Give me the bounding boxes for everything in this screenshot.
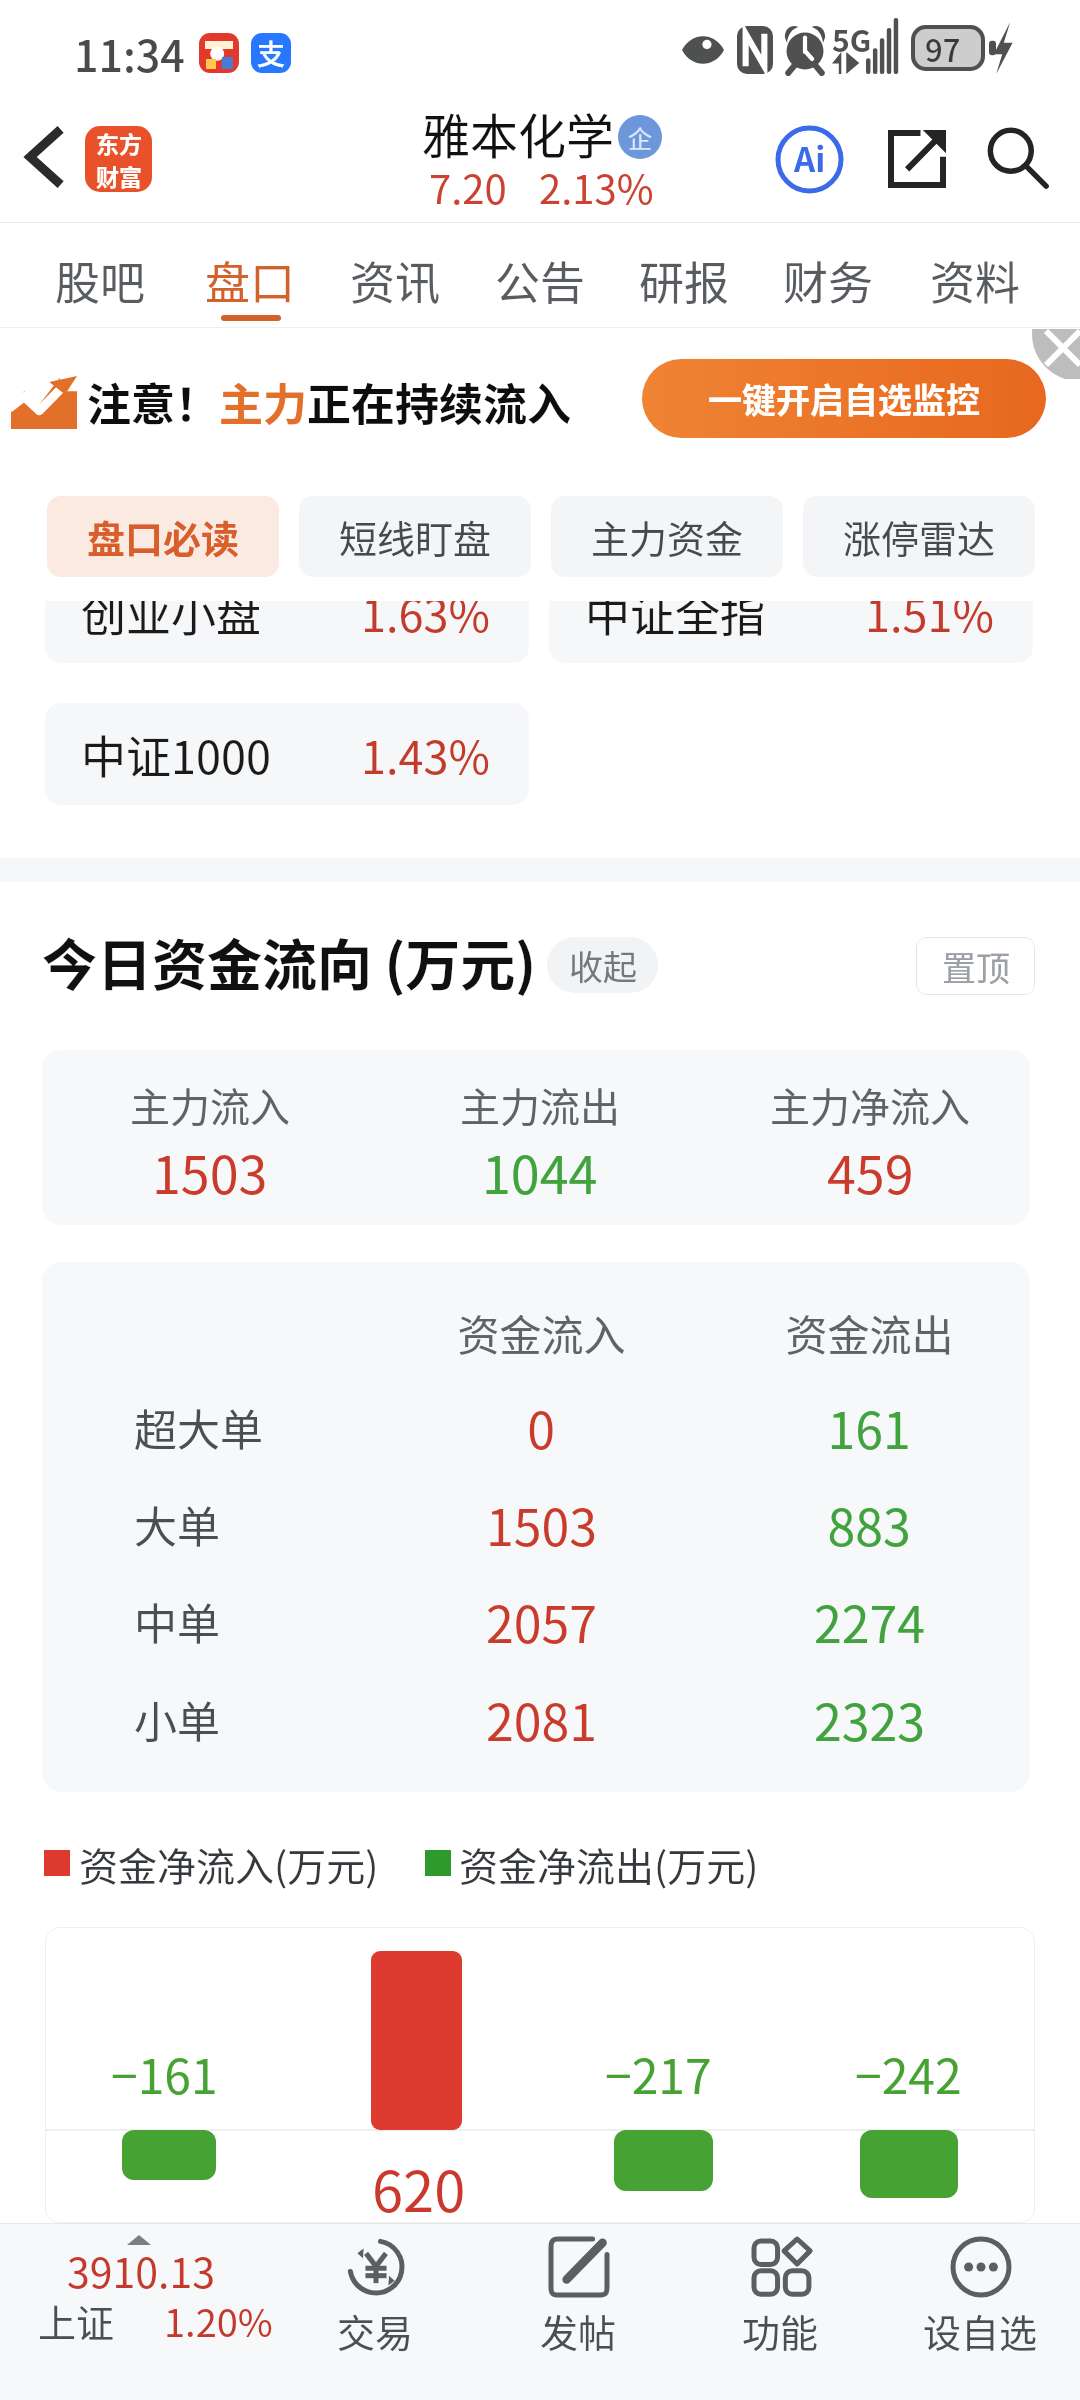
staticText: 资金净流入(万元) [79, 1836, 379, 1892]
staticText: 资料 [930, 248, 1021, 313]
staticText: 资金流出 [785, 1302, 954, 1363]
staticText: 1.43% [361, 722, 490, 787]
staticText: 发帖 [540, 2303, 617, 2358]
staticText: 97 [925, 26, 961, 71]
staticText: 涨停雷达 [843, 509, 996, 564]
staticText: 883 [827, 1488, 911, 1560]
staticText: 2081 [486, 1683, 597, 1755]
button[interactable]: 设自选 [884, 2223, 1076, 2400]
staticText: 主力净流入 [770, 1076, 970, 1134]
staticText: 财富 [96, 159, 142, 192]
staticText: 1044 [482, 1134, 598, 1209]
staticText: 2323 [814, 1683, 925, 1755]
staticText: 置顶 [942, 942, 1010, 991]
button[interactable]: Close [1028, 329, 1080, 379]
staticText: 主力流入 [130, 1076, 290, 1134]
staticText: 企 [628, 120, 652, 155]
button[interactable]: 主力资金 [551, 496, 783, 577]
staticText: 设自选 [923, 2303, 1038, 2358]
staticText: 公告 [495, 248, 586, 313]
staticText: 1503 [486, 1488, 597, 1560]
staticText: 东方 [96, 126, 142, 159]
button[interactable]: 交易 [279, 2223, 471, 2400]
button[interactable]: 发帖 [482, 2223, 674, 2400]
staticText: 1.63% [361, 601, 490, 645]
staticText: 中证全指 [585, 601, 766, 645]
staticText: 小单 [134, 1688, 220, 1750]
button[interactable]: 资讯 [323, 224, 467, 328]
staticText: 2057 [486, 1585, 597, 1657]
button[interactable]: 中证全指 [549, 601, 1033, 663]
staticText: 0 [527, 1391, 555, 1463]
button[interactable]: Share [880, 122, 954, 196]
button[interactable]: 公告 [468, 224, 612, 328]
button[interactable]: Back [8, 122, 78, 192]
button[interactable]: 一键开启自选监控 [642, 359, 1046, 438]
staticText: 3910.13 [67, 2240, 215, 2299]
button[interactable]: 创业小盘 [45, 601, 529, 663]
staticText: 资金流入 [457, 1302, 626, 1363]
button[interactable]: Search [984, 124, 1050, 190]
button[interactable]: 功能 [684, 2223, 876, 2400]
staticText: 中证1000 [81, 722, 271, 787]
button[interactable]: 资料 [903, 224, 1047, 328]
staticText: 交易 [337, 2303, 414, 2358]
button[interactable]: 短线盯盘 [299, 496, 531, 577]
staticText: 11:34 [74, 22, 185, 84]
staticText: 459 [827, 1134, 914, 1209]
staticText: 盘口必读 [87, 509, 240, 564]
staticText: 主力流出 [460, 1076, 620, 1134]
staticText: 2.13% [539, 158, 654, 216]
staticText: 正在持续流入 [307, 370, 571, 434]
staticText: 2274 [814, 1585, 925, 1657]
staticText: 主力资金 [591, 509, 744, 564]
staticText: 短线盯盘 [339, 509, 492, 564]
staticText: 一键开启自选监控 [708, 374, 980, 423]
staticText: 超大单 [134, 1396, 263, 1458]
staticText: 161 [827, 1391, 911, 1463]
staticText: 股吧 [55, 248, 146, 313]
staticText: 资讯 [350, 248, 441, 313]
staticText: 1503 [152, 1134, 268, 1209]
staticText: −161 [111, 2038, 218, 2108]
staticText: 1.51% [865, 601, 994, 645]
button[interactable]: 3910.13 [0, 2223, 300, 2400]
staticText: 功能 [742, 2303, 819, 2358]
button[interactable]: 涨停雷达 [803, 496, 1035, 577]
button[interactable]: 置顶 [916, 937, 1035, 995]
staticText: 支 [257, 33, 286, 73]
staticText: 研报 [639, 248, 730, 313]
staticText: 中单 [134, 1590, 220, 1652]
button[interactable]: East Money [85, 126, 152, 192]
staticText: −242 [855, 2038, 962, 2108]
staticText: 盘口 [205, 248, 296, 313]
staticText: 大单 [134, 1493, 220, 1555]
staticText: 上证 [38, 2293, 115, 2348]
button[interactable]: 股吧 [28, 224, 172, 328]
staticText: −217 [605, 2038, 712, 2108]
button[interactable]: 财务 [756, 224, 900, 328]
staticText: 注意！ [87, 370, 219, 434]
staticText: 收起 [569, 941, 637, 990]
button[interactable]: 盘口必读 [47, 496, 279, 577]
button[interactable]: 盘口 [178, 224, 322, 328]
staticText: 资金净流出(万元) [459, 1836, 759, 1892]
staticText: 今日资金流向 (万元) [42, 921, 537, 1001]
staticText: Ai [794, 134, 826, 182]
button[interactable]: 中证1000 [45, 703, 529, 805]
staticText: 雅本化学 [422, 98, 615, 168]
staticText: 1.20% [164, 2293, 273, 2348]
button[interactable]: 研报 [612, 224, 756, 328]
button[interactable]: AI assistant [775, 125, 844, 194]
staticText: 财务 [783, 248, 874, 313]
staticText: 5G [832, 17, 872, 60]
staticText: 创业小盘 [81, 601, 262, 645]
staticText: 620 [372, 2147, 466, 2223]
button[interactable]: 收起 [547, 937, 658, 993]
staticText: 7.20 [429, 158, 507, 216]
staticText: 主力 [219, 370, 307, 434]
